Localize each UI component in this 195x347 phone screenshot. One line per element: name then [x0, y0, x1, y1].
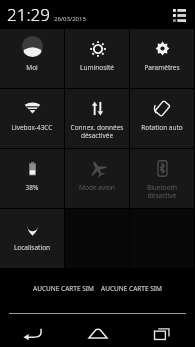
button[interactable]: Recent apps	[130, 319, 195, 347]
staticText: 26/03/2015	[54, 15, 86, 23]
button[interactable]: 38%	[0, 149, 64, 208]
button[interactable]: Moi	[0, 29, 64, 88]
button[interactable]: Localisation	[0, 209, 64, 268]
button[interactable]: Paramètres	[130, 29, 194, 88]
button[interactable]: Livebox-43CC	[0, 89, 64, 148]
staticText: Paramètres	[132, 63, 192, 72]
staticText: Livebox-43CC	[2, 123, 62, 132]
button[interactable]: Connex. données désactivée	[65, 89, 129, 148]
staticText: 38%	[2, 183, 62, 192]
button[interactable]: Mode avion	[65, 149, 129, 208]
staticText: AUCUNE CARTE SIM	[101, 284, 162, 293]
staticText: Luminosité	[67, 63, 127, 72]
staticText: Localisation	[2, 243, 62, 252]
staticText: Moi	[2, 63, 62, 72]
button[interactable]: Back	[0, 319, 65, 347]
staticText: 21:29	[7, 3, 50, 26]
button[interactable]: Home	[65, 319, 130, 347]
staticText: Rotation auto	[132, 123, 192, 132]
button[interactable]: Bluetooth désactivé	[130, 149, 194, 208]
button[interactable]: Open quick settings list	[171, 7, 187, 23]
staticText: AUCUNE CARTE SIM	[33, 284, 94, 293]
button[interactable]: Rotation auto	[130, 89, 194, 148]
staticText: Connex. données désactivée	[67, 123, 127, 140]
staticText: Mode avion	[67, 183, 127, 192]
button[interactable]: Luminosité	[65, 29, 129, 88]
staticText: Bluetooth désactivé	[132, 183, 192, 200]
